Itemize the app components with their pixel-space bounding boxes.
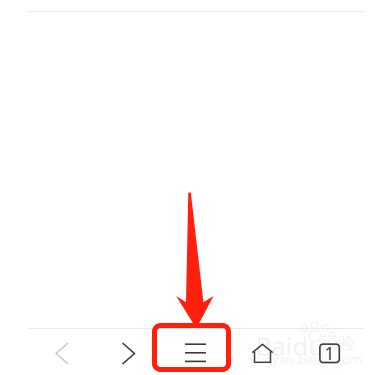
staticText: jingyan.baidu.com <box>250 350 362 368</box>
button[interactable]: Home <box>231 330 293 375</box>
staticText: 1 <box>325 342 335 365</box>
button[interactable]: Forward <box>97 330 159 375</box>
button[interactable]: Menu <box>162 330 228 375</box>
button[interactable]: Back <box>31 330 93 375</box>
staticText: Baidu <box>255 329 324 363</box>
staticText: 经验 <box>321 332 355 354</box>
button[interactable]: Tabs <box>299 330 361 375</box>
